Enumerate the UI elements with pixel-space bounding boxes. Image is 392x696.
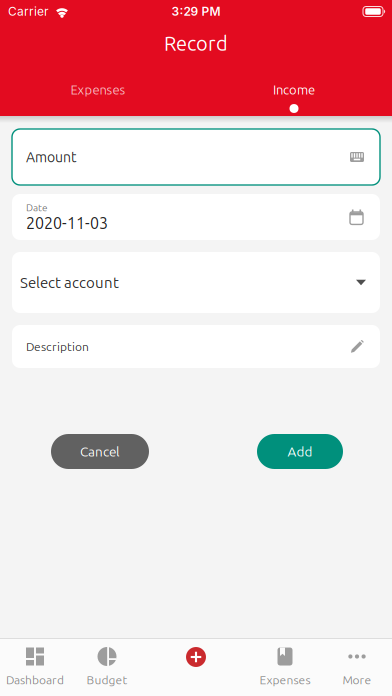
staticText: Carrier xyxy=(8,4,49,19)
button[interactable]: Description xyxy=(12,325,380,368)
button[interactable]: Dashboard xyxy=(0,647,70,686)
button[interactable]: More xyxy=(322,647,392,686)
staticText: Select account xyxy=(20,274,119,291)
staticText: Record xyxy=(164,32,228,54)
staticText: 3:29 PM xyxy=(171,4,220,19)
staticText: Date xyxy=(26,202,48,213)
staticText: Income xyxy=(273,82,315,97)
button[interactable]: Income xyxy=(196,82,392,113)
staticText: Expenses xyxy=(70,82,125,97)
staticText: Description xyxy=(26,340,89,353)
button[interactable]: Add record xyxy=(144,647,248,686)
staticText: Amount xyxy=(26,149,77,165)
button[interactable]: Date xyxy=(12,194,380,240)
button[interactable]: Select account xyxy=(12,252,380,313)
button[interactable]: Cancel xyxy=(51,434,149,469)
staticText: Budget xyxy=(86,673,127,686)
button[interactable]: Add xyxy=(257,434,343,469)
staticText: Add xyxy=(287,444,312,459)
button[interactable]: Budget xyxy=(70,647,144,686)
button[interactable]: Amount xyxy=(12,129,380,185)
button[interactable]: Expenses xyxy=(248,647,322,686)
staticText: Expenses xyxy=(259,673,310,686)
staticText: 2020-11-03 xyxy=(26,214,108,232)
staticText: Cancel xyxy=(80,444,120,459)
staticText: More xyxy=(342,673,371,686)
staticText: Dashboard xyxy=(6,673,64,686)
button[interactable]: Expenses xyxy=(0,82,196,113)
